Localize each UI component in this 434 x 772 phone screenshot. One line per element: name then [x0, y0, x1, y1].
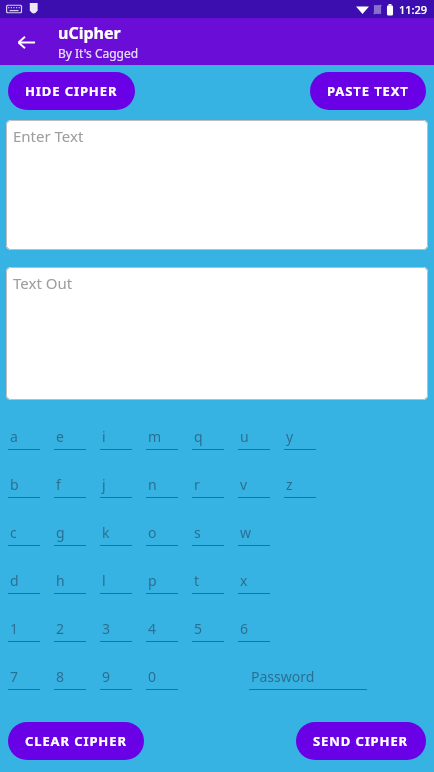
- button[interactable]: i: [100, 427, 146, 450]
- staticText: b: [10, 475, 19, 494]
- staticText: 0: [148, 667, 157, 686]
- staticText: d: [10, 571, 19, 590]
- staticText: z: [286, 475, 293, 494]
- staticText: s: [194, 523, 201, 542]
- staticText: p: [148, 571, 157, 590]
- staticText: SEND CIPHER: [313, 732, 409, 750]
- button[interactable]: c: [8, 523, 54, 546]
- staticText: j: [102, 475, 106, 494]
- button[interactable]: q: [192, 427, 238, 450]
- staticText: m: [148, 427, 162, 446]
- button[interactable]: o: [146, 523, 192, 546]
- staticText: q: [194, 427, 203, 446]
- button[interactable]: 3: [100, 619, 146, 642]
- button[interactable]: a: [8, 427, 54, 450]
- button[interactable]: m: [146, 427, 192, 450]
- button[interactable]: b: [8, 475, 54, 498]
- button[interactable]: g: [54, 523, 100, 546]
- button[interactable]: w: [238, 523, 284, 546]
- button[interactable]: HIDE CIPHER: [8, 72, 135, 110]
- button[interactable]: PASTE TEXT: [310, 72, 426, 110]
- staticText: 2: [56, 619, 65, 638]
- staticText: t: [194, 571, 200, 590]
- staticText: 8: [56, 667, 65, 686]
- button[interactable]: u: [238, 427, 284, 450]
- staticText: CLEAR CIPHER: [25, 732, 127, 750]
- staticText: a: [10, 427, 18, 446]
- staticText: PASTE TEXT: [327, 82, 409, 100]
- button[interactable]: 2: [54, 619, 100, 642]
- staticText: Text Out: [13, 273, 73, 293]
- staticText: u: [240, 427, 249, 446]
- button[interactable]: 7: [8, 667, 54, 690]
- button[interactable]: 5: [192, 619, 238, 642]
- button[interactable]: x: [238, 571, 284, 594]
- staticText: uCipher: [58, 22, 121, 44]
- staticText: c: [10, 523, 17, 542]
- staticText: h: [56, 571, 65, 590]
- staticText: 6: [240, 619, 249, 638]
- staticText: r: [194, 475, 200, 494]
- button[interactable]: Back: [6, 22, 46, 62]
- button[interactable]: Text Out: [6, 267, 428, 400]
- button[interactable]: d: [8, 571, 54, 594]
- staticText: f: [56, 475, 61, 494]
- staticText: y: [286, 427, 294, 446]
- button[interactable]: 0: [146, 667, 192, 690]
- button[interactable]: e: [54, 427, 100, 450]
- button[interactable]: 8: [54, 667, 100, 690]
- staticText: By It's Cagged: [58, 45, 139, 61]
- button[interactable]: 9: [100, 667, 146, 690]
- staticText: e: [56, 427, 64, 446]
- button[interactable]: v: [238, 475, 284, 498]
- button[interactable]: p: [146, 571, 192, 594]
- staticText: o: [148, 523, 157, 542]
- staticText: x: [240, 571, 248, 590]
- staticText: 3: [102, 619, 111, 638]
- button[interactable]: s: [192, 523, 238, 546]
- staticText: 5: [194, 619, 203, 638]
- staticText: 1: [10, 619, 19, 638]
- staticText: 7: [10, 667, 19, 686]
- staticText: l: [102, 571, 106, 590]
- staticText: Enter Text: [13, 126, 84, 146]
- staticText: 4: [148, 619, 157, 638]
- button[interactable]: CLEAR CIPHER: [8, 722, 144, 760]
- staticText: g: [56, 523, 65, 542]
- button[interactable]: n: [146, 475, 192, 498]
- staticText: v: [240, 475, 248, 494]
- button[interactable]: 4: [146, 619, 192, 642]
- staticText: Password: [251, 667, 315, 686]
- staticText: 9: [102, 667, 111, 686]
- staticText: i: [102, 427, 106, 446]
- button[interactable]: f: [54, 475, 100, 498]
- button[interactable]: z: [284, 475, 330, 498]
- button[interactable]: r: [192, 475, 238, 498]
- button[interactable]: 1: [8, 619, 54, 642]
- button[interactable]: l: [100, 571, 146, 594]
- staticText: 11:29: [399, 2, 428, 17]
- button[interactable]: Enter Text: [6, 120, 428, 250]
- button[interactable]: t: [192, 571, 238, 594]
- button[interactable]: j: [100, 475, 146, 498]
- button[interactable]: 6: [238, 619, 284, 642]
- staticText: n: [148, 475, 157, 494]
- staticText: w: [240, 523, 252, 542]
- button[interactable]: k: [100, 523, 146, 546]
- staticText: k: [102, 523, 110, 542]
- button[interactable]: SEND CIPHER: [296, 722, 426, 760]
- button[interactable]: Password: [249, 667, 371, 690]
- button[interactable]: h: [54, 571, 100, 594]
- button[interactable]: y: [284, 427, 330, 450]
- staticText: HIDE CIPHER: [25, 82, 118, 100]
